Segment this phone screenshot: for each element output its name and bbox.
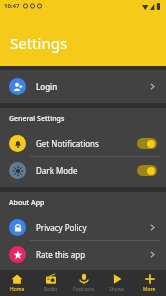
staticText: Privacy Policy xyxy=(36,222,87,233)
button[interactable]: Radio xyxy=(34,270,67,296)
button[interactable]: Login xyxy=(0,70,166,103)
button[interactable]: Get Notifications xyxy=(0,130,166,156)
staticText: Get Notifications xyxy=(36,138,99,149)
staticText: Rate this app xyxy=(36,249,86,260)
staticText: General Settings xyxy=(9,114,65,124)
other: Open xyxy=(148,250,157,259)
staticText: Login xyxy=(36,81,58,92)
staticText: Home xyxy=(10,286,25,293)
other: Open xyxy=(148,82,157,91)
staticText: Podcasts xyxy=(73,286,94,293)
staticText: Radio xyxy=(44,286,58,293)
button[interactable]: Dark Mode xyxy=(0,157,166,183)
button[interactable]: Privacy Policy xyxy=(0,214,166,240)
other: Open xyxy=(148,223,157,232)
staticText: Settings xyxy=(10,33,68,53)
staticText: More xyxy=(143,286,156,293)
button[interactable]: More xyxy=(133,270,166,296)
button[interactable]: Podcasts xyxy=(67,270,100,296)
button[interactable]: Shows xyxy=(100,270,133,296)
button[interactable]: Toggle xyxy=(137,165,157,176)
button[interactable]: Home xyxy=(0,270,34,296)
staticText: About App xyxy=(9,198,45,208)
staticText: Dark Mode xyxy=(36,165,78,176)
staticText: Shows xyxy=(109,286,125,293)
button[interactable]: Toggle xyxy=(137,138,157,149)
button[interactable]: Rate this app xyxy=(0,241,166,267)
staticText: 10:47 xyxy=(4,2,20,10)
